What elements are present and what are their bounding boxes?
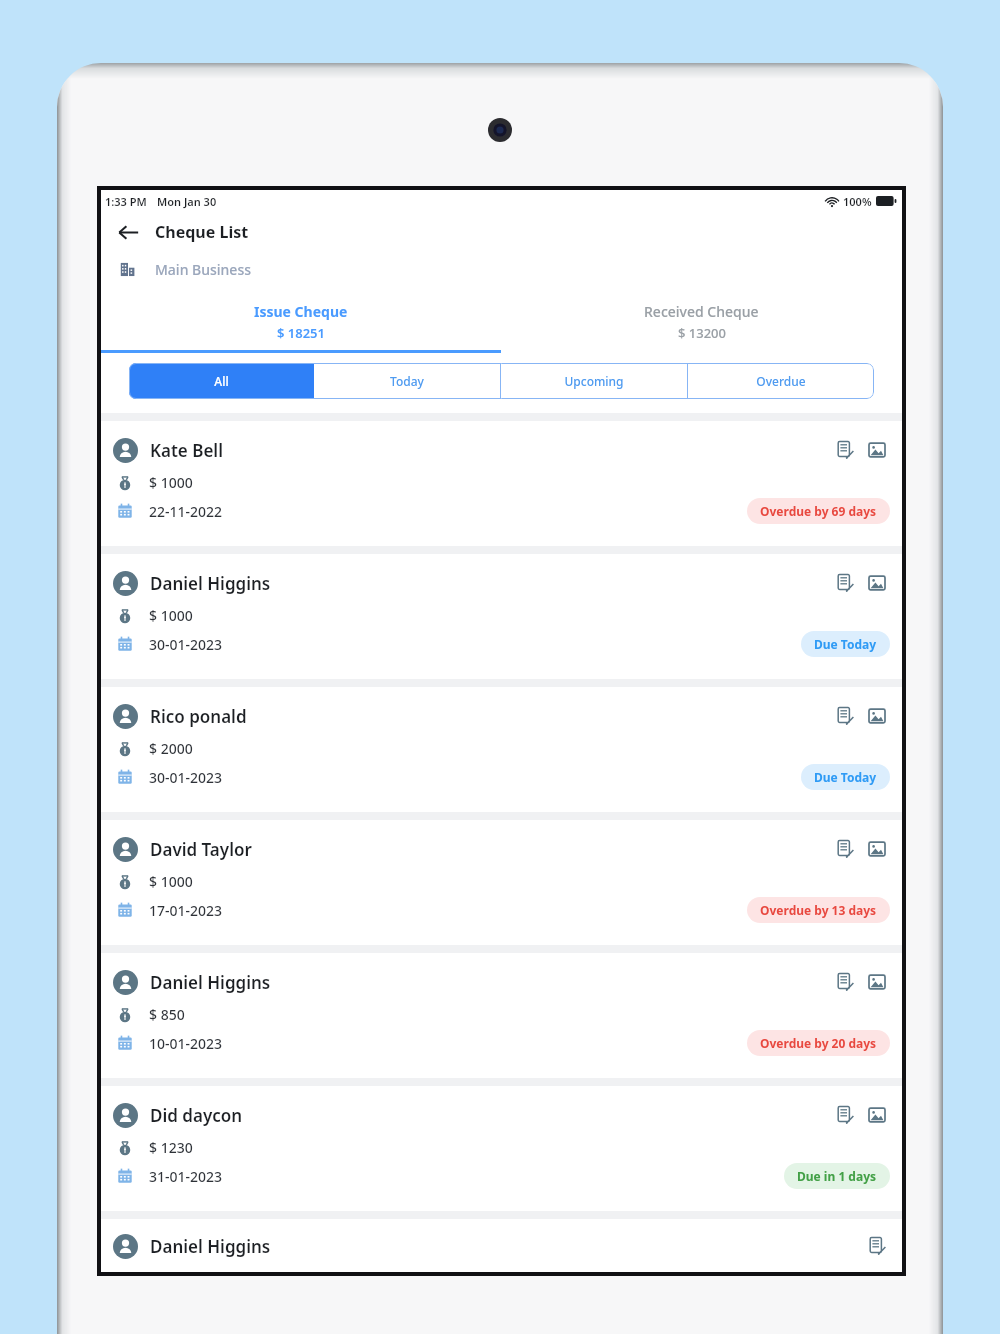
staticText: $ 1230 — [149, 1138, 193, 1157]
staticText: Overdue by 69 days — [760, 503, 877, 519]
button[interactable]: Did daycon — [101, 1086, 902, 1211]
staticText: Rico ponald — [150, 705, 247, 728]
staticText: 1:33 PM — [105, 194, 147, 209]
staticText: Today — [390, 373, 424, 389]
staticText: Did daycon — [150, 1104, 243, 1127]
button[interactable]: Upcoming — [501, 363, 687, 399]
staticText: Received Cheque — [644, 302, 759, 321]
staticText: Due Today — [814, 769, 877, 785]
staticText: 30-01-2023 — [149, 635, 223, 654]
staticText: Main Business — [155, 260, 251, 279]
staticText: 100% — [843, 194, 872, 209]
staticText: Daniel Higgins — [150, 1235, 271, 1258]
button[interactable]: Back — [111, 215, 145, 249]
staticText: $ 1000 — [149, 872, 193, 891]
staticText: Overdue by 13 days — [760, 902, 877, 918]
staticText: $ 2000 — [149, 739, 193, 758]
button[interactable]: View image — [864, 1102, 890, 1128]
button[interactable]: Rico ponald — [101, 687, 902, 812]
button[interactable]: David Taylor — [101, 820, 902, 945]
button[interactable]: Daniel Higgins — [101, 953, 902, 1078]
staticText: Cheque List — [155, 221, 249, 243]
button[interactable]: Due Today — [801, 764, 890, 790]
staticText: David Taylor — [150, 838, 252, 861]
staticText: Kate Bell — [150, 439, 223, 462]
button[interactable]: Edit note — [832, 836, 858, 862]
staticText: Daniel Higgins — [150, 572, 271, 595]
staticText: 31-01-2023 — [149, 1167, 223, 1186]
button[interactable]: Edit note — [832, 437, 858, 463]
button[interactable]: Overdue by 20 days — [747, 1030, 890, 1056]
button[interactable]: Due Today — [801, 631, 890, 657]
button[interactable]: Overdue by 13 days — [747, 897, 890, 923]
button[interactable]: Edit note — [832, 969, 858, 995]
staticText: Due Today — [814, 636, 877, 652]
button[interactable]: View image — [864, 703, 890, 729]
staticText: $ 850 — [149, 1005, 185, 1024]
button[interactable]: View image — [864, 836, 890, 862]
button[interactable]: Edit note — [864, 1233, 890, 1259]
button[interactable]: Overdue — [688, 363, 874, 399]
staticText: Issue Cheque — [254, 302, 348, 321]
button[interactable]: View image — [864, 570, 890, 596]
button[interactable]: View image — [864, 969, 890, 995]
staticText: $ 1000 — [149, 473, 193, 492]
staticText: $ 1000 — [149, 606, 193, 625]
staticText: 10-01-2023 — [149, 1034, 223, 1053]
staticText: 17-01-2023 — [149, 901, 223, 920]
button[interactable]: Today — [314, 363, 500, 399]
button[interactable]: Edit note — [832, 703, 858, 729]
staticText: Overdue by 20 days — [760, 1035, 877, 1051]
button[interactable]: Edit note — [832, 570, 858, 596]
button[interactable]: Kate Bell — [101, 421, 902, 546]
button[interactable]: Overdue by 69 days — [747, 498, 890, 524]
button[interactable]: Issue Cheque — [101, 294, 501, 350]
staticText: Mon Jan 30 — [157, 194, 217, 209]
staticText: Daniel Higgins — [150, 971, 271, 994]
button[interactable]: Received Cheque — [501, 294, 902, 350]
staticText: Overdue — [756, 373, 806, 389]
button[interactable]: Due in 1 days — [784, 1163, 890, 1189]
staticText: 30-01-2023 — [149, 768, 223, 787]
staticText: $ 18251 — [277, 324, 325, 342]
staticText: All — [214, 373, 229, 389]
button[interactable]: View image — [864, 437, 890, 463]
staticText: $ 13200 — [678, 324, 726, 342]
staticText: Upcoming — [564, 373, 624, 389]
button[interactable]: All — [129, 363, 314, 399]
button[interactable]: Daniel Higgins — [101, 554, 902, 679]
staticText: Due in 1 days — [797, 1168, 877, 1184]
staticText: 22-11-2022 — [149, 502, 223, 521]
button[interactable]: Edit note — [832, 1102, 858, 1128]
